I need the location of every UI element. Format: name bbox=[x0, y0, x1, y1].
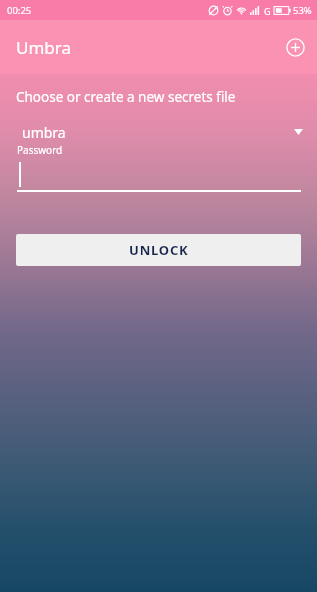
staticText: Choose or create a new secrets file bbox=[16, 88, 236, 106]
staticText: Umbra bbox=[16, 36, 71, 59]
staticText: umbra bbox=[22, 123, 66, 142]
button[interactable]: Add new secrets file bbox=[282, 34, 308, 60]
staticText: 00:25 bbox=[7, 4, 32, 17]
button[interactable]: UNLOCK bbox=[16, 234, 301, 266]
button[interactable]: Password input bbox=[17, 157, 301, 192]
staticText: G bbox=[264, 5, 271, 17]
button[interactable]: umbra bbox=[16, 121, 303, 143]
staticText: Password bbox=[17, 143, 63, 157]
staticText: UNLOCK bbox=[129, 241, 189, 259]
staticText: 53% bbox=[293, 4, 312, 17]
